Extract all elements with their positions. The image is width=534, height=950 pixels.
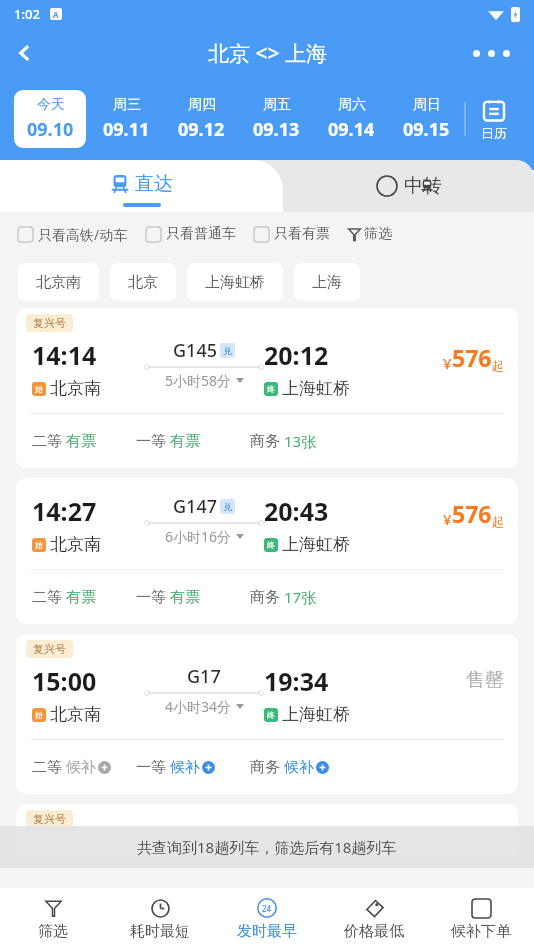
button[interactable]: 周三 xyxy=(88,90,164,148)
staticText: 20:43 xyxy=(264,494,329,528)
button[interactable]: 周四 xyxy=(164,90,239,148)
staticText: 一等 xyxy=(136,758,166,777)
staticText: 兑 xyxy=(223,345,232,356)
staticText: 发时最早 xyxy=(237,922,297,941)
staticText: 二等 xyxy=(32,588,62,607)
staticText: 北京南 xyxy=(50,534,101,555)
staticText: 只看有票 xyxy=(274,225,330,243)
staticText: 复兴号 xyxy=(33,316,66,330)
staticText: 周日 xyxy=(413,96,441,114)
staticText: G145 xyxy=(173,338,217,363)
staticText: 有票 xyxy=(170,588,200,607)
staticText: 价格最低 xyxy=(344,922,404,941)
staticText: G147 xyxy=(173,494,217,519)
staticText: 北京 xyxy=(128,273,158,292)
staticText: 共查询到18趟列车，筛选后有18趟列车 xyxy=(137,837,397,857)
staticText: 15:00 xyxy=(32,664,97,698)
button[interactable]: 筛选 xyxy=(348,225,392,243)
button[interactable]: 日历 xyxy=(466,98,522,141)
staticText: 直达 xyxy=(135,172,173,196)
button[interactable]: 只看高铁/动车 xyxy=(18,225,128,244)
staticText: 候补 xyxy=(66,758,96,777)
staticText: 576 xyxy=(452,498,492,529)
staticText: 复兴号 xyxy=(33,812,66,826)
staticText: 上海虹桥 xyxy=(282,378,350,399)
staticText: 北京 <> 上海 xyxy=(208,39,327,68)
staticText: ¥ xyxy=(443,353,452,373)
staticText: A xyxy=(53,9,59,20)
button[interactable]: 只看有票 xyxy=(254,225,330,243)
button[interactable]: 候补下单 xyxy=(427,888,534,950)
button[interactable]: Back xyxy=(0,28,50,78)
staticText: 周六 xyxy=(338,96,366,114)
staticText: G17 xyxy=(187,664,221,689)
staticText: 上海虹桥 xyxy=(282,704,350,725)
staticText: 耗时最短 xyxy=(130,922,190,941)
staticText: 24 xyxy=(262,903,272,914)
staticText: 09.13 xyxy=(253,117,300,142)
staticText: 09.15 xyxy=(403,117,450,142)
button[interactable]: 筛选 xyxy=(0,888,106,950)
staticText: 有票 xyxy=(66,588,96,607)
button[interactable]: 北京 xyxy=(110,263,176,301)
staticText: 候补 xyxy=(170,758,200,777)
button[interactable]: 14:27 xyxy=(16,478,518,624)
staticText: 商务 xyxy=(250,432,280,451)
staticText: 1:02 xyxy=(14,5,40,23)
button[interactable]: 复兴号 xyxy=(16,308,518,468)
staticText: 商务 xyxy=(250,758,280,777)
staticText: 终 xyxy=(267,540,275,550)
staticText: 09.14 xyxy=(328,117,375,142)
button[interactable]: 上海 xyxy=(294,263,360,301)
button[interactable]: 价格最低 xyxy=(320,888,427,950)
staticText: 20:12 xyxy=(264,338,329,372)
button[interactable]: 中转 xyxy=(376,174,442,198)
staticText: 中转 xyxy=(404,174,442,198)
button[interactable]: More options xyxy=(467,44,516,63)
staticText: 起 xyxy=(492,358,504,373)
button[interactable]: 只看普通车 xyxy=(146,225,236,243)
staticText: 今天 xyxy=(37,96,65,114)
staticText: 售罄 xyxy=(466,668,504,692)
staticText: 筛选 xyxy=(364,225,392,243)
staticText: 北京南 xyxy=(50,378,101,399)
staticText: 复兴号 xyxy=(33,642,66,656)
staticText: 周五 xyxy=(263,96,291,114)
button[interactable]: 上海虹桥 xyxy=(187,263,283,301)
button[interactable]: 周五 xyxy=(239,90,314,148)
button[interactable]: 北京南 xyxy=(18,263,99,301)
staticText: 候补 xyxy=(284,758,314,777)
staticText: 09.12 xyxy=(178,117,225,142)
staticText: 二等 xyxy=(32,432,62,451)
staticText: 周四 xyxy=(188,96,216,114)
staticText: 起 xyxy=(492,514,504,529)
staticText: 上海虹桥 xyxy=(282,534,350,555)
staticText: 候补下单 xyxy=(451,922,511,941)
staticText: 只看高铁/动车 xyxy=(38,225,128,244)
button[interactable]: 今天 xyxy=(14,90,86,148)
button[interactable]: 复兴号 xyxy=(16,804,518,858)
staticText: 一等 xyxy=(136,588,166,607)
button[interactable]: 周日 xyxy=(389,90,464,148)
staticText: 576 xyxy=(452,342,492,373)
staticText: 始 xyxy=(35,384,43,394)
button[interactable]: 24 xyxy=(213,888,320,950)
staticText: 上海虹桥 xyxy=(205,273,265,292)
staticText: 一等 xyxy=(136,432,166,451)
staticText: 有票 xyxy=(66,432,96,451)
staticText: 只看普通车 xyxy=(166,225,236,243)
staticText: 周三 xyxy=(113,96,141,114)
staticText: 北京南 xyxy=(50,704,101,725)
button[interactable]: 周六 xyxy=(314,90,389,148)
staticText: 上海 xyxy=(312,273,342,292)
button[interactable]: 直达 xyxy=(0,160,283,212)
staticText: 17张 xyxy=(284,587,317,607)
button[interactable]: 复兴号 xyxy=(16,634,518,794)
staticText: ¥ xyxy=(443,509,452,529)
staticText: 09.11 xyxy=(103,117,150,142)
staticText: 始 xyxy=(35,710,43,720)
staticText: 二等 xyxy=(32,758,62,777)
staticText: 日历 xyxy=(481,125,507,141)
staticText: 13张 xyxy=(284,431,317,451)
button[interactable]: 耗时最短 xyxy=(106,888,213,950)
